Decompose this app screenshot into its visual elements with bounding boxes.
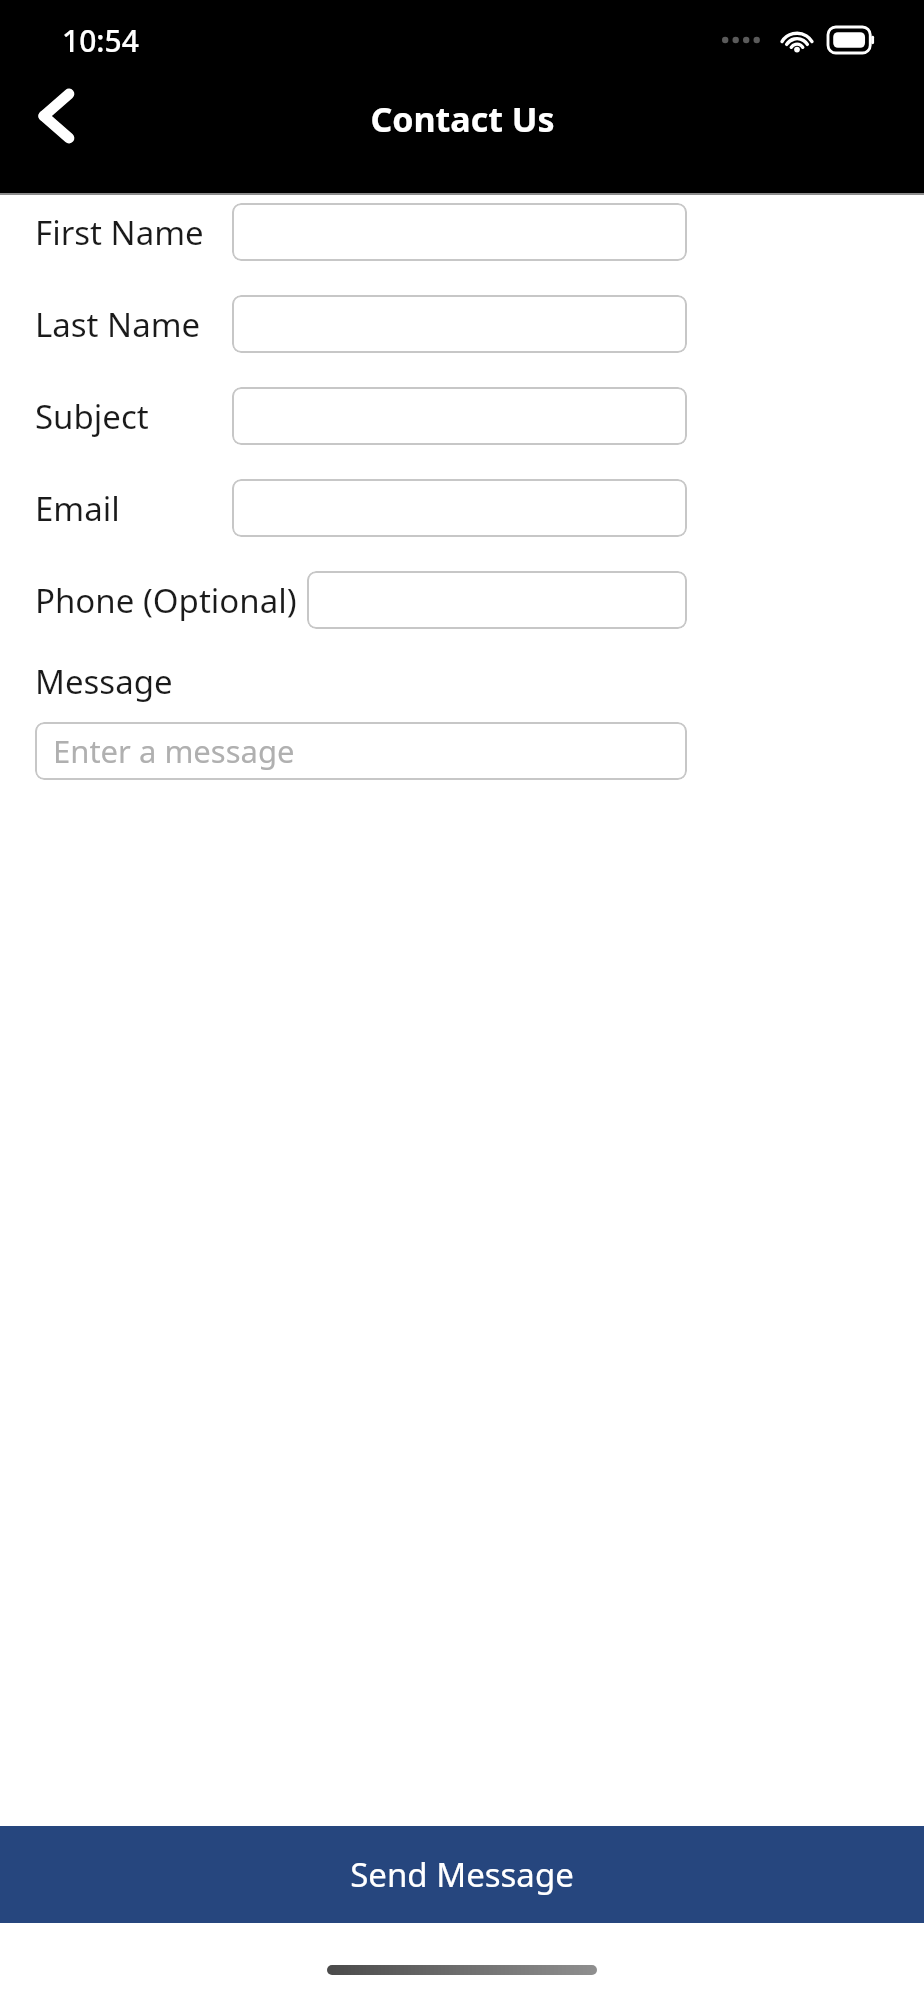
staticText: Last Name: [35, 302, 201, 347]
staticText: Enter a message: [53, 730, 295, 772]
staticText: Message: [35, 659, 173, 704]
button[interactable]: [232, 203, 687, 261]
staticText: 10:54: [62, 20, 139, 61]
staticText: Email: [35, 486, 120, 531]
button[interactable]: [232, 387, 687, 445]
button[interactable]: [307, 571, 687, 629]
staticText: Contact Us: [370, 96, 555, 142]
button[interactable]: Send Message: [0, 1826, 924, 1923]
button[interactable]: [232, 295, 687, 353]
staticText: Subject: [35, 394, 149, 439]
staticText: First Name: [35, 210, 204, 255]
staticText: Phone (Optional): [35, 578, 297, 623]
button[interactable]: Enter a message: [35, 722, 687, 780]
button[interactable]: Back: [18, 78, 94, 154]
button[interactable]: [232, 479, 687, 537]
staticText: Send Message: [350, 1852, 574, 1897]
